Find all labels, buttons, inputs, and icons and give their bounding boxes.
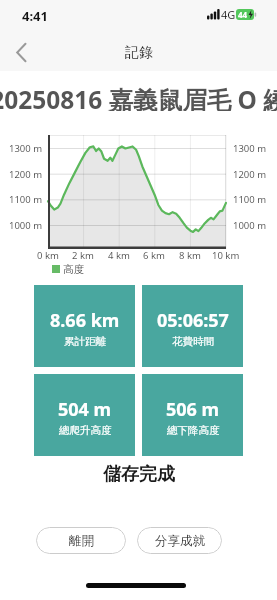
staticText: 8.66 km (50, 308, 120, 333)
staticText: 2 km (72, 249, 94, 262)
staticText: 1000 m (9, 219, 43, 232)
staticText: 1100 m (9, 193, 43, 206)
button[interactable]: 506 m (142, 374, 243, 456)
staticText: 6 km (143, 249, 165, 262)
staticText: 儲存完成 (103, 463, 175, 486)
staticText: 506 m (166, 397, 220, 422)
button[interactable] (6, 38, 36, 66)
staticText: 4:41 (22, 7, 48, 22)
staticText: 44 (238, 9, 248, 20)
staticText: 累計距離 (64, 335, 106, 348)
staticText: 1300 m (9, 142, 43, 155)
staticText: 1300 m (233, 142, 267, 155)
button[interactable]: 05:06:57 (142, 285, 243, 367)
staticText: 8 km (179, 249, 201, 262)
button[interactable]: 離開 (36, 527, 126, 554)
staticText: 1200 m (9, 168, 43, 181)
staticText: 分享成就 (155, 533, 205, 549)
staticText: 504 m (58, 397, 112, 422)
staticText: 0 km (37, 249, 59, 262)
staticText: 記錄 (125, 44, 153, 60)
staticText: 離開 (69, 533, 94, 549)
staticText: 花費時間 (172, 335, 214, 348)
staticText: 1100 m (233, 193, 267, 206)
button[interactable]: 504 m (34, 374, 135, 456)
staticText: 1000 m (233, 219, 267, 232)
button[interactable]: 分享成就 (137, 527, 222, 554)
staticText: 4G (221, 7, 235, 22)
staticText: 高度 (63, 263, 84, 276)
staticText: 總爬升高度 (59, 424, 112, 437)
staticText: 4 km (108, 249, 130, 262)
staticText: 20250816 嘉義鼠眉毛 O 繞 (0, 83, 277, 111)
staticText: 1200 m (233, 168, 267, 181)
staticText: 總下降高度 (167, 424, 220, 437)
staticText: 05:06:57 (157, 308, 229, 333)
staticText: 10 km (212, 249, 240, 262)
button[interactable]: 8.66 km (34, 285, 135, 367)
